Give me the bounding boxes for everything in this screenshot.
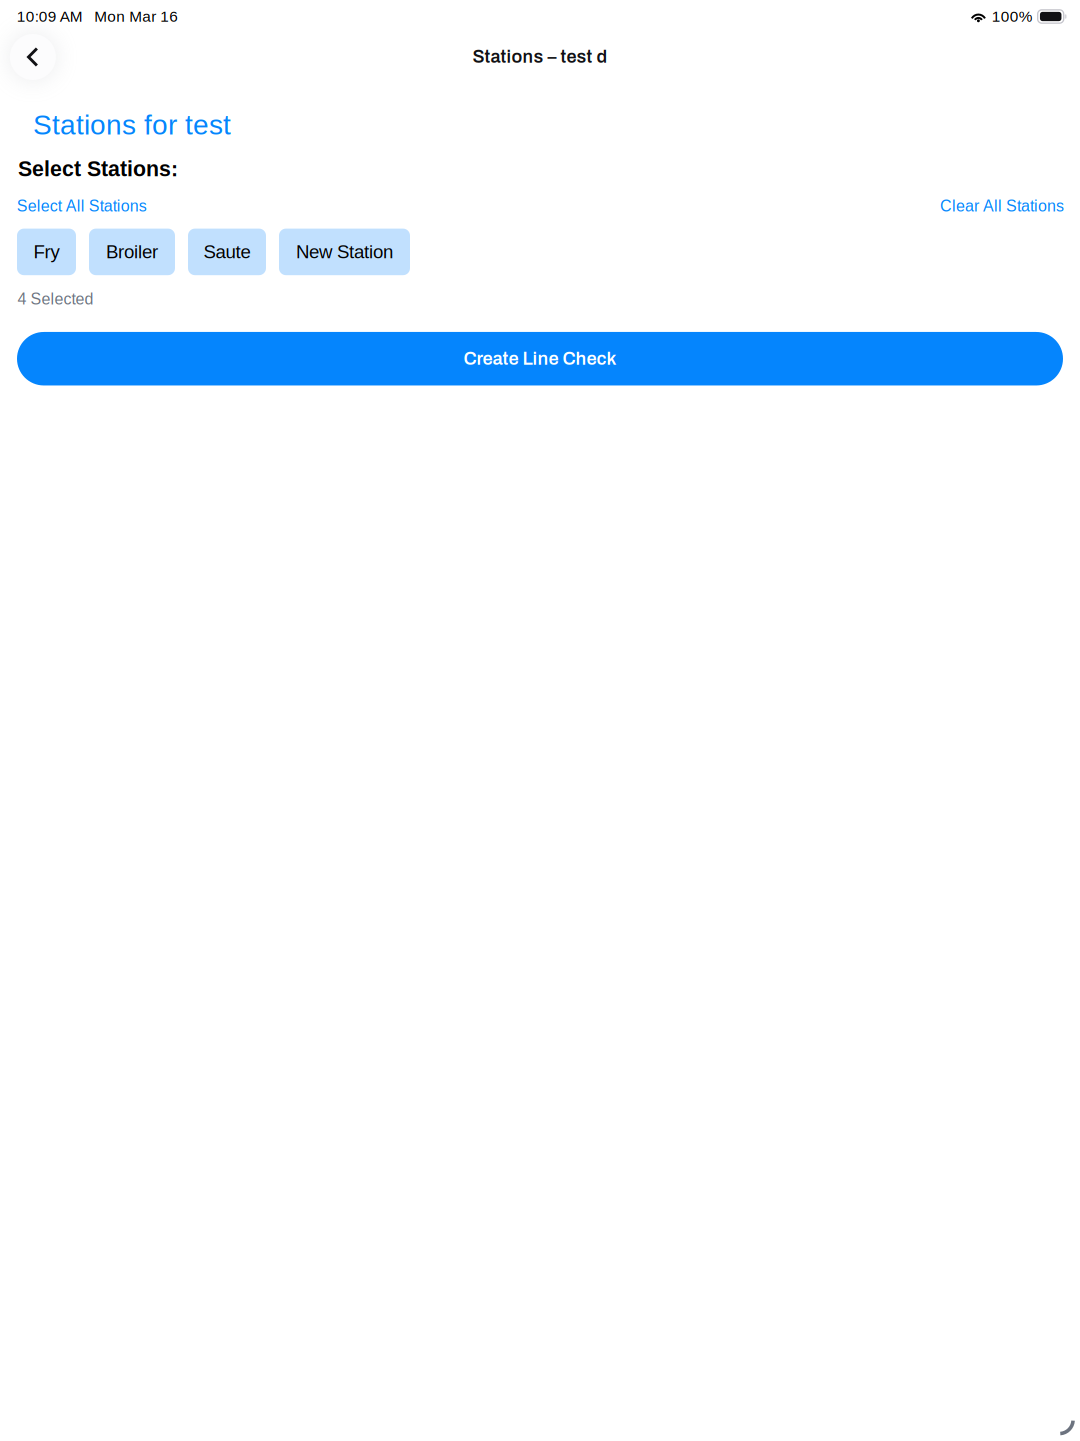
- staticText: Select All Stations: [17, 197, 147, 215]
- button[interactable]: Back: [0, 21, 69, 93]
- staticText: Create Line Check: [463, 349, 616, 369]
- staticText: 100%: [992, 8, 1033, 25]
- staticText: Select Stations:: [18, 157, 178, 181]
- staticText: Broiler: [106, 241, 158, 262]
- button[interactable]: Select All Stations: [17, 197, 147, 215]
- button[interactable]: Fry: [17, 229, 76, 275]
- button[interactable]: Clear All Stations: [940, 197, 1064, 215]
- staticText: Mon Mar 16: [94, 8, 178, 25]
- button[interactable]: Create Line Check: [17, 332, 1063, 385]
- staticText: New Station: [296, 241, 393, 262]
- button[interactable]: New Station: [279, 229, 410, 275]
- button[interactable]: Saute: [188, 229, 266, 275]
- staticText: Saute: [203, 241, 250, 262]
- staticText: 10:09 AM: [17, 8, 83, 25]
- staticText: Stations for test: [33, 109, 231, 140]
- staticText: Fry: [33, 241, 59, 262]
- button[interactable]: Broiler: [89, 229, 175, 275]
- staticText: Clear All Stations: [940, 197, 1064, 215]
- staticText: Stations – test d: [472, 47, 607, 66]
- staticText: 4 Selected: [18, 290, 94, 308]
